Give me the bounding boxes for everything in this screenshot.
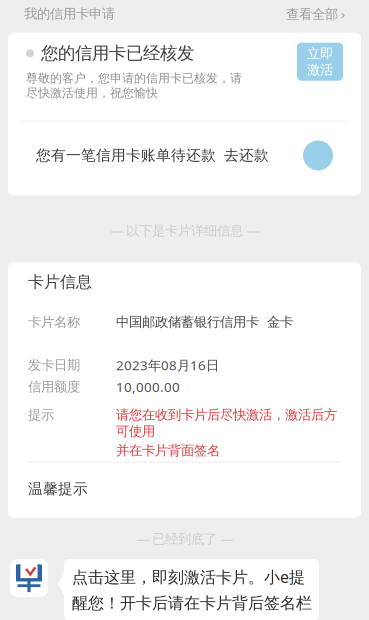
button[interactable]: 您的信用卡已经核发 [8, 33, 361, 120]
staticText: — 以下是卡片详细信息 — [110, 221, 259, 239]
staticText: 温馨提示 [28, 480, 88, 498]
staticText: 我的信用卡申请 [24, 6, 115, 22]
staticText: — 已经到底了 — [136, 530, 233, 547]
staticText: 醒您！开卡后请在卡片背后签名栏 [72, 593, 312, 613]
staticText: 卡片信息 [28, 272, 92, 292]
button[interactable]: 点击这里，即刻激活卡片。小e提 [58, 559, 319, 620]
staticText: 查看全部 › [286, 5, 345, 23]
staticText: 发卡日期 [28, 357, 80, 373]
button[interactable]: 小e助手 [10, 559, 48, 597]
staticText: 并在卡片背面签名 [116, 442, 220, 459]
staticText: 立即 激活 [307, 45, 333, 78]
button[interactable]: 查看全部 › [286, 5, 345, 23]
staticText: 点击这里，即刻激活卡片。小e提 [72, 566, 305, 587]
staticText: 信用额度 [28, 379, 80, 395]
staticText: 卡片名称 [28, 314, 80, 330]
button[interactable]: 您有一笔信用卡账单待还款 去还款 [8, 121, 361, 195]
staticText: 您的信用卡已经核发 [41, 43, 194, 64]
staticText: 尽快激活使用，祝您愉快 [26, 86, 158, 100]
staticText: 10,000.00 [116, 378, 180, 396]
staticText: 中国邮政储蓄银行信用卡 金卡 [116, 314, 293, 330]
staticText: 2023年08月16日 [116, 356, 219, 374]
staticText: 提示 [28, 407, 54, 423]
staticText: 请您在收到卡片后尽快激活，激活后方可使用 [116, 407, 337, 439]
staticText: 尊敬的客户，您申请的信用卡已核发，请 [26, 71, 242, 86]
staticText: 您有一笔信用卡账单待还款 去还款 [36, 146, 269, 164]
